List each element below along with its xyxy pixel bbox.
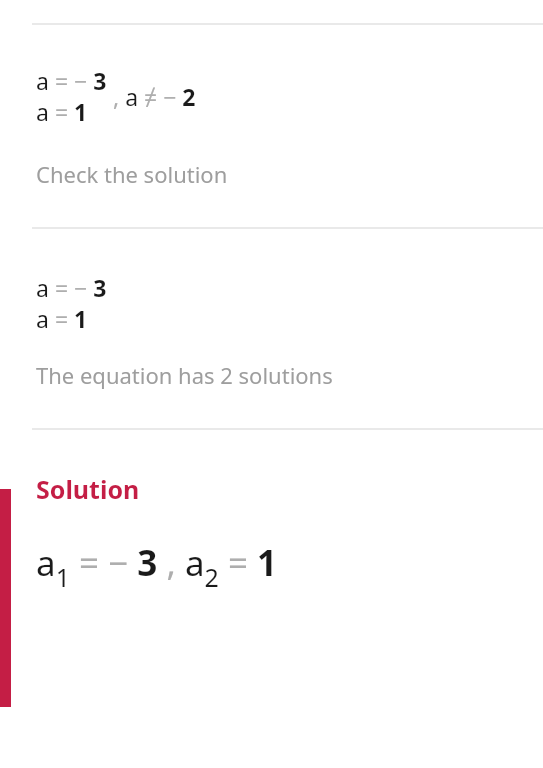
button[interactable]: a = − 3 [0, 25, 543, 227]
staticText: The equation has 2 solutions [36, 360, 333, 390]
staticText: a1 = − 3 , a2 = 1 [36, 539, 278, 594]
staticText: , a ≠ − 2 [113, 81, 196, 112]
button[interactable]: Solution [0, 430, 543, 650]
staticText: Check the solution [36, 159, 228, 189]
staticText: Solution [36, 472, 140, 506]
staticText: a = − 3 [36, 272, 107, 303]
staticText: a = 1 [36, 96, 88, 127]
staticText: a = 1 [36, 303, 88, 334]
staticText: a = − 3 [36, 65, 107, 96]
button[interactable]: a = − 3 [0, 229, 543, 428]
